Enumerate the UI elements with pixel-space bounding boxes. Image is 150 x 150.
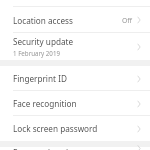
button[interactable]: Fingerprint ID — [0, 66, 150, 91]
button[interactable]: Emergency SOS — [0, 0, 150, 7]
button[interactable]: Password vault — [0, 147, 150, 150]
staticText: Security update — [13, 36, 74, 47]
staticText: Lock screen password — [13, 123, 98, 134]
staticText: Face recognition — [13, 98, 77, 109]
staticText: Location access — [13, 15, 73, 26]
staticText: Fingerprint ID — [13, 73, 67, 84]
staticText: Off — [122, 16, 132, 25]
staticText: Password vault — [13, 147, 72, 150]
button[interactable]: Security update — [0, 33, 150, 60]
staticText: 1 February 2019 — [13, 49, 60, 57]
button[interactable]: Lock screen password — [0, 116, 150, 141]
button[interactable]: Face recognition — [0, 91, 150, 116]
button[interactable]: Location access — [0, 7, 150, 33]
